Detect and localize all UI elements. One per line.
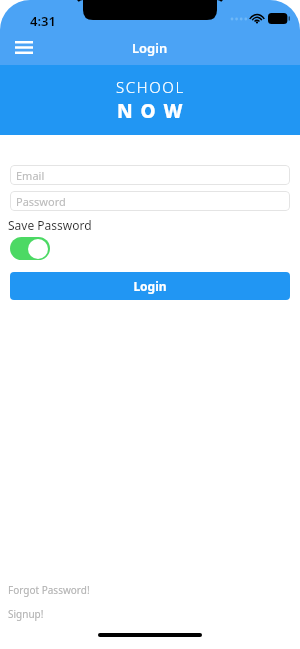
staticText: Password <box>16 194 66 209</box>
staticText: Email <box>16 168 45 183</box>
staticText: 4:31 <box>30 12 56 30</box>
button[interactable]: Email <box>10 165 290 185</box>
staticText: Forgot Password! <box>8 583 90 597</box>
staticText: N O W <box>117 98 185 124</box>
staticText: Login <box>133 278 167 294</box>
button[interactable]: Signup! <box>8 607 44 621</box>
button[interactable]: Forgot Password! <box>8 583 90 597</box>
staticText: SCHOOL <box>116 77 185 97</box>
staticText: Login <box>132 39 168 57</box>
button[interactable]: Menu <box>10 33 38 61</box>
button[interactable]: Save Password toggle <box>10 237 50 260</box>
button[interactable]: Login <box>10 272 290 300</box>
staticText: Signup! <box>8 607 44 621</box>
staticText: Save Password <box>8 217 92 233</box>
button[interactable]: Password <box>10 191 290 211</box>
